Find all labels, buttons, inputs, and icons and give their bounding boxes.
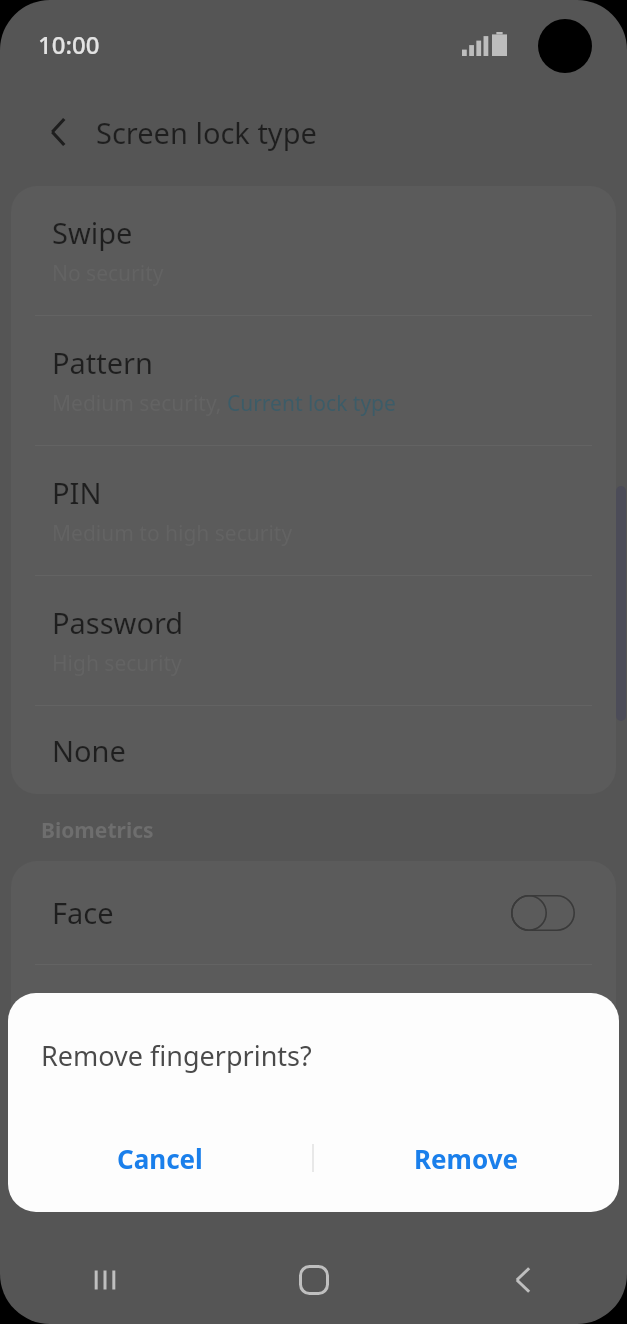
button[interactable]: Cancel bbox=[8, 1120, 312, 1212]
button[interactable]: Pattern bbox=[11, 316, 616, 445]
staticText: PIN bbox=[52, 473, 102, 512]
staticText: Screen lock type bbox=[96, 113, 317, 152]
staticText: Remove fingerprints? bbox=[41, 1037, 312, 1074]
staticText: Swipe bbox=[52, 213, 133, 252]
staticText: Password bbox=[52, 603, 184, 642]
button[interactable]: None bbox=[11, 706, 616, 794]
button[interactable]: Remove bbox=[314, 1120, 619, 1212]
button[interactable]: Home bbox=[209, 1240, 418, 1324]
staticText: None bbox=[52, 731, 126, 770]
button[interactable]: Face bbox=[11, 861, 616, 964]
staticText: Cancel bbox=[117, 1141, 203, 1176]
button[interactable]: Back bbox=[34, 108, 82, 156]
button[interactable]: Face unlock toggle bbox=[511, 895, 575, 931]
button[interactable]: Back bbox=[418, 1240, 627, 1324]
button[interactable]: Recent apps bbox=[0, 1240, 209, 1324]
button[interactable]: Swipe bbox=[11, 186, 616, 315]
staticText: Remove bbox=[414, 1141, 519, 1176]
staticText: Pattern bbox=[52, 343, 154, 382]
staticText: Face bbox=[52, 893, 114, 932]
button[interactable]: PIN bbox=[11, 446, 616, 575]
staticText: Biometrics bbox=[41, 816, 154, 845]
staticText: 10:00 bbox=[38, 28, 100, 61]
button[interactable]: Password bbox=[11, 576, 616, 705]
staticText: Medium security, Current lock type bbox=[52, 389, 396, 418]
button[interactable]: Fingerprints bbox=[11, 965, 616, 1068]
